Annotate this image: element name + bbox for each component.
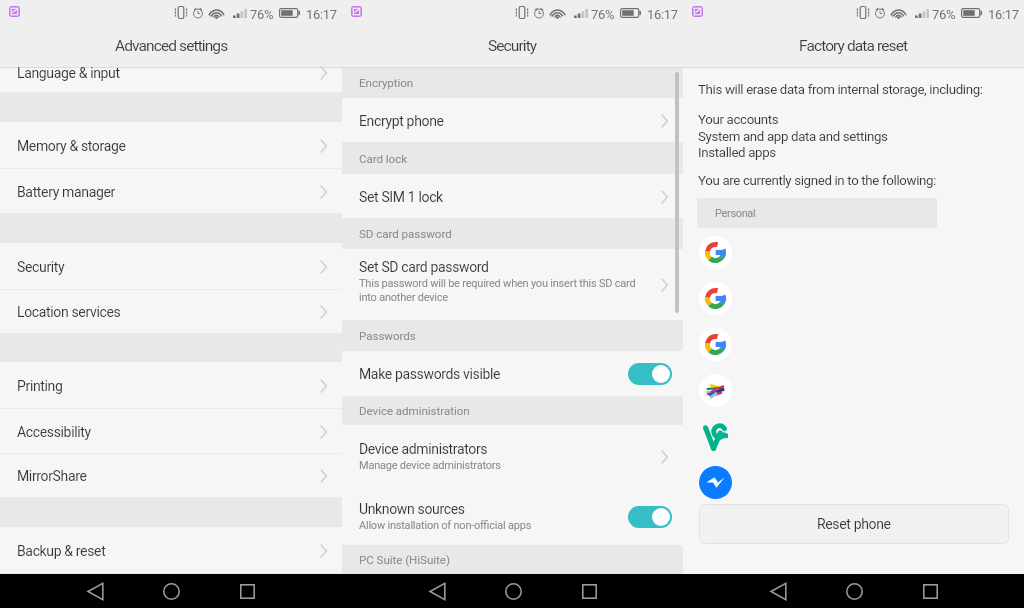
staticText: This password will be required when you … (359, 277, 636, 304)
button[interactable]: Unknown sources (342, 489, 683, 545)
staticText: You are currently signed in to the follo… (698, 173, 937, 189)
button[interactable]: MirrorShare (0, 454, 342, 498)
staticText: Set SD card password (359, 259, 489, 275)
staticText: Advanced settings (115, 37, 228, 55)
staticText: Unknown sources (359, 501, 465, 517)
button[interactable]: Home (496, 574, 530, 608)
staticText: Language & input (17, 65, 120, 81)
staticText: 76% (250, 7, 274, 22)
staticText: Personal (715, 207, 756, 220)
staticText: This will erase data from internal stora… (698, 82, 983, 98)
staticText: Manage device administrators (359, 459, 501, 472)
button[interactable]: Toggle Unknown sources (628, 506, 672, 528)
button[interactable]: Recent apps (913, 574, 947, 608)
staticText: Memory & storage (17, 138, 126, 154)
staticText: Security (17, 259, 65, 275)
button[interactable]: Accessibility (0, 409, 342, 454)
staticText: Security (488, 37, 537, 55)
button[interactable]: Back (761, 574, 795, 608)
button[interactable]: Home (154, 574, 188, 608)
button[interactable]: Security (0, 243, 342, 290)
staticText: Device administration (359, 404, 470, 418)
staticText: 76% (932, 7, 956, 22)
staticText: Set SIM 1 lock (359, 189, 443, 205)
staticText: Printing (17, 378, 63, 394)
staticText: MirrorShare (17, 468, 87, 484)
staticText: Encrypt phone (359, 113, 444, 129)
staticText: 16:17 (988, 7, 1019, 22)
button[interactable]: Recent apps (230, 574, 264, 608)
staticText: Your accounts System and app data and se… (698, 112, 888, 160)
staticText: Factory data reset (799, 37, 908, 55)
staticText: Passwords (359, 329, 416, 343)
button[interactable]: Set SD card password (342, 249, 683, 321)
button[interactable]: Reset phone (699, 504, 1009, 544)
staticText: 16:17 (647, 7, 678, 22)
staticText: Accessibility (17, 424, 91, 440)
staticText: 16:17 (306, 7, 337, 22)
button[interactable]: Backup & reset (0, 527, 342, 574)
button[interactable]: Home (837, 574, 871, 608)
button[interactable]: Back (78, 574, 112, 608)
button[interactable]: Toggle Make passwords visible (628, 363, 672, 385)
button[interactable]: Set SIM 1 lock (342, 174, 683, 219)
staticText: Encryption (359, 76, 414, 90)
button[interactable]: Language & input (0, 68, 342, 93)
button[interactable]: Back (420, 574, 454, 608)
staticText: 76% (591, 7, 615, 22)
button[interactable]: Device administrators (342, 425, 683, 489)
staticText: Location services (17, 304, 121, 320)
button[interactable]: Printing (0, 362, 342, 409)
button[interactable]: Recent apps (572, 574, 606, 608)
button[interactable]: Make passwords visible (342, 351, 683, 397)
staticText: Make passwords visible (359, 366, 501, 382)
staticText: Backup & reset (17, 543, 106, 559)
button[interactable]: Battery manager (0, 169, 342, 214)
staticText: SD card password (359, 227, 452, 241)
button[interactable]: Encrypt phone (342, 98, 683, 143)
button[interactable]: Memory & storage (0, 122, 342, 169)
staticText: PC Suite (HiSuite) (359, 553, 450, 567)
staticText: Allow installation of non-official apps (359, 519, 532, 532)
staticText: Battery manager (17, 184, 115, 200)
staticText: Device administrators (359, 441, 488, 457)
button[interactable]: Location services (0, 290, 342, 334)
staticText: Reset phone (817, 516, 891, 532)
staticText: Card lock (359, 152, 408, 166)
